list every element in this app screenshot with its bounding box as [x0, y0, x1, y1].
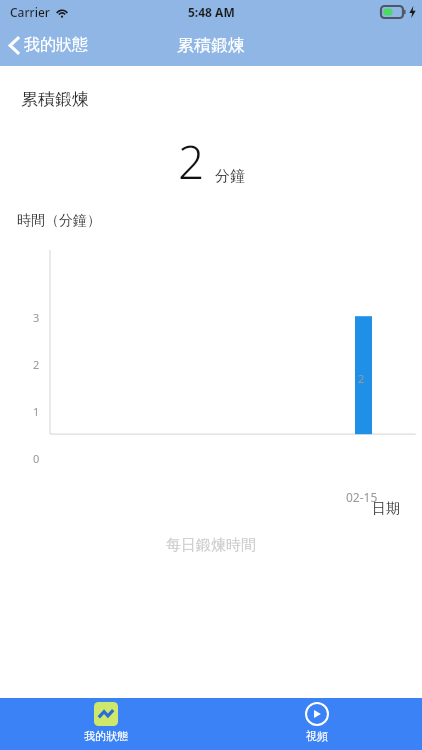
staticText: 每日鍛煉時間 [0, 536, 422, 555]
staticText: 3 [33, 310, 422, 325]
staticText: 02-15 [346, 489, 378, 505]
other: My status [94, 702, 118, 726]
staticText: 我的狀態 [84, 729, 128, 743]
staticText: Carrier [10, 4, 50, 20]
button[interactable]: Video [211, 698, 422, 750]
staticText: 2 [358, 371, 365, 386]
staticText: 5:48 AM [188, 4, 235, 20]
other: Video [305, 702, 329, 726]
staticText: 1 [33, 404, 422, 419]
staticText: 2 [33, 357, 422, 372]
staticText: 我的狀態 [24, 35, 88, 55]
button[interactable]: Back [0, 29, 98, 61]
staticText: 2 [178, 130, 205, 193]
staticText: 累積鍛煉 [177, 35, 245, 56]
staticText: 分鐘 [215, 167, 245, 186]
button[interactable]: My status [0, 698, 211, 750]
staticText: 視頻 [306, 729, 328, 743]
other: Back [9, 36, 20, 55]
staticText: 日期 [0, 500, 400, 518]
staticText: 累積鍛煉 [21, 89, 89, 110]
staticText: 0 [33, 451, 422, 466]
staticText: 時間（分鐘） [17, 212, 101, 230]
